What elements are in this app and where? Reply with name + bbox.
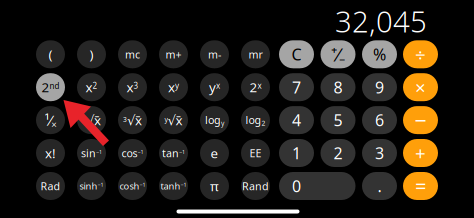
button[interactable]: inverse cosine — [118, 139, 147, 167]
button[interactable]: Memory clear — [118, 40, 147, 68]
button[interactable]: cube root of x — [118, 106, 147, 134]
button[interactable]: x cubed — [118, 73, 147, 101]
staticText: sin−1 — [81, 146, 102, 160]
button[interactable]: inverse hyperbolic cosine — [118, 172, 147, 200]
button[interactable]: square root of x — [77, 106, 106, 134]
button[interactable]: 2nd — [36, 73, 65, 101]
button[interactable]: Close parenthesis — [77, 40, 106, 68]
button[interactable]: 2 to the power x — [241, 73, 270, 101]
staticText: 6 — [375, 109, 384, 131]
button[interactable]: inverse hyperbolic tangent — [159, 172, 188, 200]
staticText: ¹⁄ₓ — [44, 110, 56, 130]
staticText: 5 — [333, 109, 342, 131]
button[interactable]: Random — [241, 172, 270, 200]
button[interactable]: Memory subtract — [200, 40, 229, 68]
staticText: x! — [45, 144, 56, 162]
staticText: + — [415, 141, 426, 165]
staticText: 32,045 — [335, 1, 427, 40]
staticText: yx — [209, 78, 220, 96]
button[interactable]: Equals — [403, 172, 438, 200]
button[interactable]: 0 — [279, 172, 355, 200]
button[interactable]: 5 — [320, 106, 355, 134]
button[interactable]: pi — [200, 172, 229, 200]
button[interactable]: one over x — [36, 106, 65, 134]
button[interactable]: Clear — [279, 40, 314, 68]
button[interactable]: Minus — [403, 106, 438, 134]
button[interactable]: inverse sine — [77, 139, 106, 167]
button[interactable]: Radians — [36, 172, 65, 200]
staticText: × — [415, 75, 426, 100]
staticText: 7 — [292, 77, 301, 98]
staticText: . — [377, 175, 381, 197]
staticText: ÷ — [415, 42, 426, 67]
button[interactable]: 7 — [279, 73, 314, 101]
staticText: tan−1 — [162, 146, 185, 160]
button[interactable]: Divide — [403, 40, 438, 68]
staticText: tanh−1 — [160, 180, 186, 192]
staticText: xy — [168, 78, 179, 96]
button[interactable]: inverse hyperbolic sine — [77, 172, 106, 200]
staticText: 9 — [375, 77, 384, 98]
staticText: mr — [248, 47, 262, 61]
button[interactable]: 6 — [362, 106, 397, 134]
button[interactable]: 9 — [362, 73, 397, 101]
staticText: % — [373, 44, 386, 65]
staticText: ( — [48, 45, 52, 63]
staticText: 1 — [292, 142, 301, 164]
button[interactable]: E E — [241, 139, 270, 167]
staticText: cosh−1 — [119, 180, 145, 192]
staticText: ⁺⁄₋ — [331, 42, 345, 67]
staticText: m+ — [165, 47, 181, 61]
staticText: e — [210, 144, 218, 162]
staticText: cos−1 — [121, 146, 143, 160]
button[interactable]: x to the power y — [159, 73, 188, 101]
button[interactable]: 4 — [279, 106, 314, 134]
staticText: m- — [208, 47, 221, 61]
staticText: − — [414, 106, 426, 134]
button[interactable]: e — [200, 139, 229, 167]
staticText: 3√x̄ — [123, 111, 142, 129]
button[interactable]: 1 — [279, 139, 314, 167]
staticText: 0 — [292, 175, 301, 197]
button[interactable]: Multiply — [403, 73, 438, 101]
staticText: Rand — [242, 179, 269, 193]
button[interactable]: Plus — [403, 139, 438, 167]
staticText: mc — [125, 47, 140, 61]
button[interactable]: 3 — [362, 139, 397, 167]
staticText: EE — [249, 146, 261, 160]
staticText: y√x̄ — [164, 111, 182, 129]
button[interactable]: log base 2 — [241, 106, 270, 134]
staticText: x2 — [85, 78, 97, 96]
button[interactable]: Decimal point — [362, 172, 397, 200]
staticText: logy — [205, 113, 224, 127]
staticText: sinh−1 — [79, 180, 103, 192]
button[interactable]: 8 — [320, 73, 355, 101]
button[interactable]: log base y — [200, 106, 229, 134]
staticText: = — [415, 173, 426, 199]
button[interactable]: y-th root of x — [159, 106, 188, 134]
button[interactable]: y to the power x — [200, 73, 229, 101]
staticText: 8 — [333, 77, 342, 98]
staticText: log2 — [245, 113, 265, 127]
button[interactable]: Plus minus — [320, 40, 355, 68]
button[interactable]: Open parenthesis — [36, 40, 65, 68]
staticText: ) — [89, 45, 93, 63]
staticText: C — [291, 44, 301, 65]
button[interactable]: Percent — [362, 40, 397, 68]
button[interactable]: x squared — [77, 73, 106, 101]
button[interactable]: inverse tangent — [159, 139, 188, 167]
staticText: 2x — [249, 78, 261, 96]
button[interactable]: 2 — [320, 139, 355, 167]
button[interactable]: Memory recall — [241, 40, 270, 68]
staticText: 2√x̄ — [82, 111, 101, 129]
staticText: π — [210, 177, 219, 195]
staticText: 3 — [375, 142, 384, 164]
staticText: 2nd — [41, 78, 59, 96]
button[interactable]: Memory add — [159, 40, 188, 68]
button[interactable]: x factorial — [36, 139, 65, 167]
staticText: 4 — [292, 109, 301, 131]
staticText: x3 — [126, 78, 138, 96]
staticText: 2 — [333, 142, 342, 164]
staticText: Rad — [40, 179, 60, 193]
